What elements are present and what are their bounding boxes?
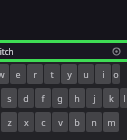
button[interactable]: Voice search xyxy=(108,43,124,59)
staticText: g xyxy=(57,92,63,104)
button[interactable]: g xyxy=(52,88,68,108)
staticText: z xyxy=(7,116,12,128)
button[interactable]: d xyxy=(18,88,34,108)
button[interactable]: w xyxy=(0,64,9,84)
button[interactable]: b xyxy=(69,112,85,132)
button[interactable]: m xyxy=(103,112,119,132)
staticText: h xyxy=(74,92,80,104)
staticText: v xyxy=(58,116,63,128)
staticText: c xyxy=(41,116,46,128)
button[interactable]: f xyxy=(35,88,51,108)
button[interactable]: s xyxy=(1,88,17,108)
staticText: n xyxy=(91,116,97,128)
button[interactable]: h xyxy=(69,88,85,108)
staticText: i xyxy=(102,68,105,80)
staticText: Switch xyxy=(0,46,14,57)
button[interactable]: y xyxy=(61,64,77,84)
button[interactable]: k xyxy=(103,88,119,108)
button[interactable]: t xyxy=(44,64,60,84)
button[interactable]: Switch xyxy=(0,40,127,62)
staticText: u xyxy=(83,68,89,80)
button[interactable]: l xyxy=(120,88,127,108)
staticText: x xyxy=(24,116,29,128)
staticText: y xyxy=(67,68,72,80)
button[interactable]: n xyxy=(86,112,102,132)
staticText: j xyxy=(93,92,96,104)
button[interactable]: r xyxy=(27,64,43,84)
button[interactable]: x xyxy=(18,112,34,132)
button[interactable]: i xyxy=(95,64,111,84)
staticText: r xyxy=(33,68,37,80)
button[interactable]: v xyxy=(52,112,68,132)
staticText: s xyxy=(7,92,12,104)
staticText: k xyxy=(109,92,114,104)
staticText: b xyxy=(74,116,80,128)
staticText: t xyxy=(50,68,54,80)
button[interactable]: c xyxy=(35,112,51,132)
button[interactable]: z xyxy=(1,112,17,132)
button[interactable]: e xyxy=(10,64,26,84)
staticText: d xyxy=(23,92,29,104)
staticText: o xyxy=(113,68,119,80)
button[interactable]: u xyxy=(78,64,94,84)
staticText: m xyxy=(107,116,116,128)
staticText: w xyxy=(0,68,5,80)
staticText: f xyxy=(41,92,45,104)
staticText: e xyxy=(15,68,21,80)
button[interactable]: o xyxy=(112,64,120,84)
staticText: l xyxy=(123,92,126,104)
button[interactable]: j xyxy=(86,88,102,108)
